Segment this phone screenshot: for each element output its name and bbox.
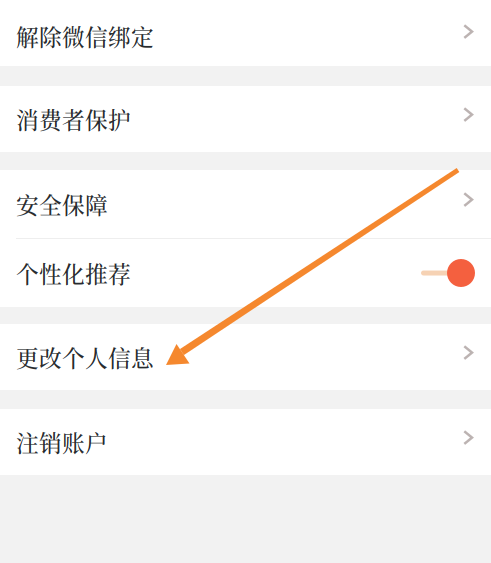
button[interactable]: 个性化推荐 (0, 239, 491, 307)
button[interactable]: 更改个人信息 (0, 324, 491, 390)
staticText: 注销账户 (16, 426, 108, 458)
staticText: 安全保障 (16, 188, 108, 220)
button[interactable]: 解除微信绑定 (0, 0, 491, 66)
button[interactable]: 消费者保护 (0, 86, 491, 152)
staticText: 更改个人信息 (16, 341, 154, 373)
button[interactable]: 安全保障 (0, 170, 491, 238)
staticText: 个性化推荐 (16, 257, 131, 289)
staticText: 消费者保护 (16, 103, 131, 135)
staticText: 解除微信绑定 (16, 20, 154, 52)
button[interactable]: 注销账户 (0, 409, 491, 475)
